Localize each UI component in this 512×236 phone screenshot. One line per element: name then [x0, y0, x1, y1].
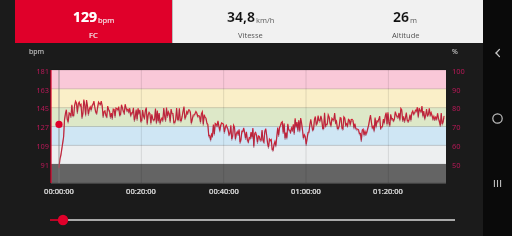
button[interactable]: Back — [483, 40, 512, 66]
staticText: 01:20:00 — [367, 186, 409, 196]
staticText: Altitude — [392, 30, 420, 40]
button[interactable]: 26 — [328, 0, 483, 43]
staticText: 01:00:00 — [285, 186, 327, 196]
staticText: FC — [89, 30, 98, 40]
staticText: 100 — [452, 66, 465, 76]
button[interactable]: Recent apps — [483, 170, 512, 196]
staticText: 70 — [452, 122, 461, 132]
staticText: 129 — [73, 7, 98, 26]
staticText: 181 — [26, 66, 49, 76]
button[interactable]: 34,8 — [173, 0, 328, 43]
staticText: m — [410, 15, 418, 25]
staticText: 127 — [26, 122, 49, 132]
staticText: 00:40:00 — [203, 186, 245, 196]
staticText: 34,8 — [227, 7, 256, 26]
button[interactable]: 129 — [15, 0, 172, 43]
staticText: % — [452, 47, 458, 57]
staticText: 80 — [452, 103, 461, 113]
staticText: 00:00:00 — [38, 186, 80, 196]
staticText: 26 — [393, 7, 410, 26]
button[interactable]: Position du graphique — [0, 208, 512, 232]
staticText: 91 — [26, 160, 49, 170]
button[interactable]: Home — [483, 105, 512, 131]
staticText: 109 — [26, 141, 49, 151]
staticText: 00:20:00 — [120, 186, 162, 196]
staticText: bpm — [98, 15, 115, 25]
staticText: 50 — [452, 160, 461, 170]
staticText: 90 — [452, 85, 461, 95]
staticText: bpm — [29, 47, 45, 57]
staticText: km/h — [256, 15, 275, 25]
staticText: 60 — [452, 141, 461, 151]
staticText: Vitesse — [238, 30, 263, 40]
staticText: 145 — [26, 103, 49, 113]
staticText: 163 — [26, 85, 49, 95]
